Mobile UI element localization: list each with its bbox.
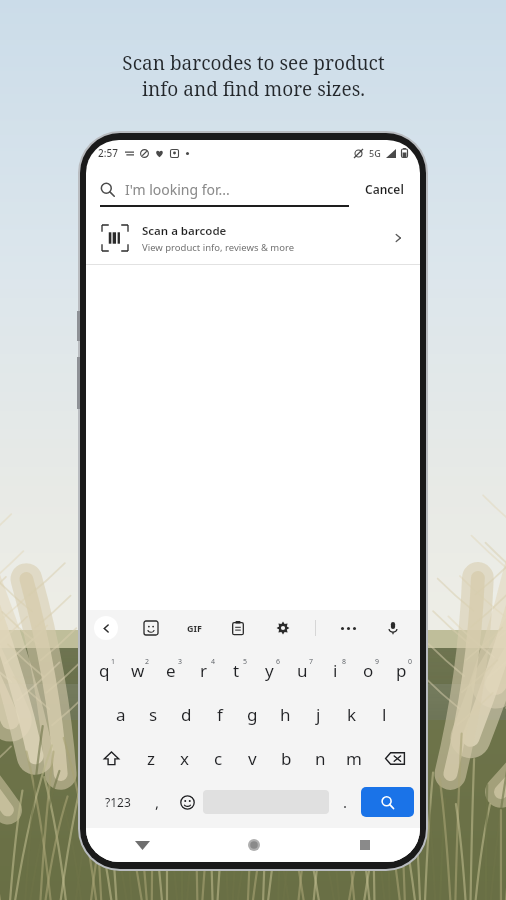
button[interactable]: Recent apps [309, 828, 420, 862]
staticText: I'm looking for... [125, 180, 230, 199]
button[interactable]: I'm looking for... [100, 166, 349, 212]
staticText: n [315, 747, 326, 770]
button[interactable]: x [167, 736, 201, 780]
staticText: y [265, 659, 274, 682]
button[interactable]: Emoji [171, 780, 203, 824]
button[interactable]: ?123 [92, 780, 144, 824]
button[interactable]: g [236, 692, 269, 736]
staticText: j [316, 703, 321, 726]
staticText: w [131, 659, 145, 682]
button[interactable]: j [302, 692, 335, 736]
staticText: ?123 [105, 794, 131, 810]
button[interactable]: Stickers [138, 615, 164, 641]
button[interactable]: Home [198, 828, 309, 862]
button[interactable]: f [203, 692, 236, 736]
staticText: u [297, 659, 308, 682]
button[interactable]: c [201, 736, 235, 780]
button[interactable]: Shift [88, 736, 134, 780]
button[interactable]: , [144, 780, 171, 824]
button[interactable]: l [368, 692, 401, 736]
button[interactable]: p [385, 648, 418, 692]
staticText: g [247, 703, 258, 726]
staticText: x [180, 747, 189, 770]
staticText: 9 [375, 657, 380, 667]
button[interactable]: m [337, 736, 371, 780]
button[interactable]: b [269, 736, 303, 780]
staticText: z [147, 747, 155, 770]
button[interactable]: w [121, 648, 154, 692]
button[interactable]: z [134, 736, 167, 780]
button[interactable]: Cancel [363, 175, 406, 203]
staticText: Scan a barcode [142, 223, 227, 239]
staticText: v [248, 747, 257, 770]
staticText: m [346, 747, 362, 770]
staticText: Scan barcodes to see product info and fi… [122, 50, 385, 102]
staticText: o [363, 659, 374, 682]
button[interactable]: GIF [183, 618, 206, 638]
button[interactable]: e [154, 648, 187, 692]
staticText: q [99, 659, 110, 682]
button[interactable]: Search [361, 787, 414, 817]
staticText: 0 [408, 657, 413, 667]
staticText: GIF [187, 622, 202, 634]
button[interactable]: . [329, 780, 361, 824]
staticText: View product info, reviews & more [142, 241, 295, 254]
staticText: 2:57 [98, 146, 118, 160]
staticText: 2 [145, 657, 150, 667]
button[interactable]: a [104, 692, 137, 736]
button[interactable]: i [319, 648, 352, 692]
staticText: t [233, 659, 240, 682]
staticText: 4 [211, 657, 216, 667]
staticText: a [116, 703, 126, 726]
button[interactable]: Clipboard [225, 615, 251, 641]
staticText: r [200, 659, 208, 682]
button[interactable]: k [335, 692, 368, 736]
button[interactable]: t [220, 648, 253, 692]
staticText: 7 [309, 657, 314, 667]
staticText: d [181, 703, 192, 726]
button[interactable]: n [303, 736, 337, 780]
staticText: 3 [178, 657, 183, 667]
button[interactable]: u [286, 648, 319, 692]
staticText: l [382, 703, 387, 726]
button[interactable]: q [88, 648, 121, 692]
staticText: , [155, 792, 160, 812]
staticText: e [166, 659, 176, 682]
button[interactable]: More options [335, 615, 361, 641]
button[interactable]: r [187, 648, 220, 692]
button[interactable]: Back [94, 616, 118, 640]
button[interactable]: Scan a barcode [86, 212, 420, 264]
staticText: i [333, 659, 338, 682]
button[interactable]: Backspace [371, 736, 418, 780]
button[interactable]: y [253, 648, 286, 692]
staticText: s [149, 703, 158, 726]
staticText: b [281, 747, 292, 770]
button[interactable]: h [269, 692, 302, 736]
staticText: 5G [369, 147, 381, 159]
staticText: p [396, 659, 407, 682]
button[interactable]: v [235, 736, 269, 780]
staticText: f [217, 703, 223, 726]
staticText: k [347, 703, 357, 726]
staticText: 5 [243, 657, 248, 667]
staticText: 1 [111, 657, 116, 667]
button[interactable]: Voice input [380, 615, 406, 641]
button[interactable]: d [170, 692, 203, 736]
staticText: h [280, 703, 291, 726]
staticText: . [343, 792, 348, 812]
staticText: 8 [342, 657, 347, 667]
button[interactable]: o [352, 648, 385, 692]
staticText: 6 [276, 657, 281, 667]
staticText: Cancel [365, 181, 404, 197]
button[interactable]: Back [86, 828, 198, 862]
button[interactable]: Settings [270, 615, 296, 641]
staticText: c [214, 747, 223, 770]
button[interactable]: s [137, 692, 170, 736]
